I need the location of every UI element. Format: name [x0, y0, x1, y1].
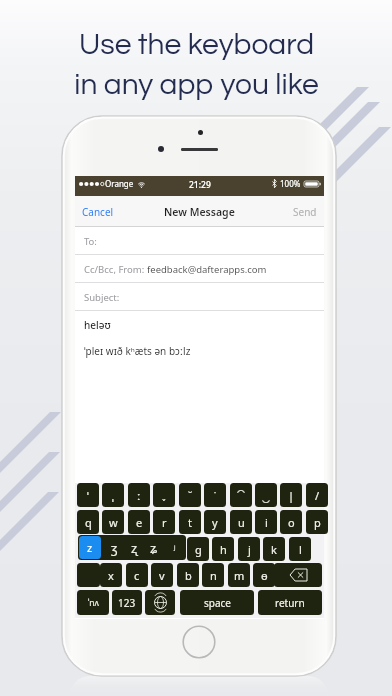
button[interactable]: b	[177, 563, 199, 587]
button[interactable]: r	[153, 510, 175, 534]
button[interactable]: ʒ	[104, 536, 124, 559]
button[interactable]: /	[306, 483, 328, 507]
button[interactable]: ː	[128, 483, 150, 507]
staticText: ˘	[188, 488, 193, 503]
button[interactable]: z	[78, 535, 186, 560]
staticText: Orange	[105, 178, 134, 189]
staticText: k	[271, 542, 277, 557]
staticText: ‿	[262, 486, 270, 504]
staticText: g	[195, 542, 202, 557]
button[interactable]: space	[180, 590, 254, 615]
button[interactable]: ˈnʌ	[77, 590, 109, 615]
staticText: Use the keyboard in any app you like	[74, 29, 319, 100]
button[interactable]: return	[258, 590, 322, 615]
staticText: c	[134, 568, 140, 583]
button[interactable]: ˯	[153, 483, 175, 507]
staticText: heləʊ	[84, 318, 111, 332]
staticText: ˙	[214, 488, 217, 503]
staticText: z	[87, 540, 93, 555]
button[interactable]: u	[230, 510, 252, 534]
button[interactable]: |	[280, 483, 302, 507]
staticText: Cancel	[82, 205, 114, 219]
staticText: ɵ	[261, 568, 268, 583]
button[interactable]: z	[79, 536, 101, 559]
staticText: ˯	[162, 489, 166, 501]
staticText: ˈnʌ	[88, 597, 99, 609]
staticText: r	[162, 515, 167, 530]
button[interactable]: ʐ	[124, 536, 144, 559]
staticText: 21:29	[189, 179, 211, 191]
staticText: ˈ	[87, 488, 89, 503]
staticText: 100%	[280, 178, 301, 189]
staticText: x	[108, 568, 114, 583]
button[interactable]: n	[202, 563, 224, 587]
staticText: ˈpleɪ wɪð kʰæts ən bɔːlz	[84, 344, 191, 358]
button[interactable]: m	[228, 563, 250, 587]
staticText: u	[238, 515, 245, 530]
button[interactable]: Send	[286, 200, 324, 224]
staticText: ʑ	[150, 539, 158, 557]
staticText: |	[288, 488, 295, 503]
staticText: h	[220, 542, 227, 557]
staticText: i	[265, 515, 268, 530]
staticText: n	[210, 568, 217, 583]
staticText: v	[159, 568, 165, 583]
staticText: e	[136, 515, 143, 530]
staticText: space	[204, 596, 231, 610]
staticText: m	[234, 568, 245, 583]
staticText: Send	[293, 205, 317, 219]
staticText: New Message	[164, 205, 235, 219]
button[interactable]: p	[306, 510, 328, 534]
button[interactable]: ˙	[204, 483, 226, 507]
button[interactable]: c	[126, 563, 148, 587]
button[interactable]: q	[77, 510, 99, 534]
button[interactable]: ɵ	[253, 563, 275, 587]
staticText: ː	[137, 488, 141, 503]
button[interactable]	[77, 563, 100, 587]
button[interactable]: ʑ	[144, 536, 164, 559]
button[interactable]: x	[100, 563, 122, 587]
button[interactable]: ‿	[255, 483, 277, 507]
button[interactable]: Subject:	[75, 283, 324, 311]
button[interactable]: w	[102, 510, 124, 534]
button[interactable]: ˘	[179, 483, 201, 507]
staticText: p	[314, 515, 321, 530]
button[interactable]: Cancel	[75, 200, 121, 224]
button[interactable]: ⁀	[230, 483, 252, 507]
staticText: y	[212, 515, 218, 530]
staticText: feedback@dafterapps.com	[147, 263, 267, 276]
button[interactable]: h	[212, 537, 234, 561]
button[interactable]: ʲ	[165, 536, 185, 559]
button[interactable]: Cc/Bcc, From:	[75, 255, 324, 283]
staticText: Cc/Bcc, From:	[84, 263, 147, 276]
button[interactable]: k	[263, 537, 285, 561]
button[interactable]: i	[255, 510, 277, 534]
staticText: q	[85, 515, 92, 530]
staticText: Subject:	[84, 291, 120, 304]
button[interactable]: 123	[112, 590, 142, 615]
staticText: t	[188, 515, 192, 530]
button[interactable]: g	[187, 537, 209, 561]
button[interactable]: ˈ	[77, 483, 99, 507]
button[interactable]: To:	[75, 227, 324, 255]
button[interactable]: v	[151, 563, 173, 587]
staticText: ʲ	[174, 542, 176, 554]
button[interactable]: y	[204, 510, 226, 534]
button[interactable]: ˌ	[102, 483, 124, 507]
button[interactable]: e	[128, 510, 150, 534]
staticText: return	[275, 596, 305, 610]
staticText: l	[299, 542, 302, 557]
button[interactable]: t	[179, 510, 201, 534]
staticText: ʒ	[111, 539, 118, 557]
button[interactable]: l	[289, 537, 311, 561]
staticText: j	[248, 542, 251, 557]
staticText: ⁀	[237, 486, 245, 504]
button[interactable]: o	[280, 510, 302, 534]
staticText: 123	[118, 596, 136, 610]
button[interactable]: Backspace	[274, 563, 322, 587]
button[interactable]: j	[238, 537, 260, 561]
staticText: ʐ	[131, 539, 138, 557]
staticText: /	[315, 488, 320, 503]
staticText: ˌ	[112, 488, 114, 503]
button[interactable]: Switch keyboard	[145, 590, 175, 615]
